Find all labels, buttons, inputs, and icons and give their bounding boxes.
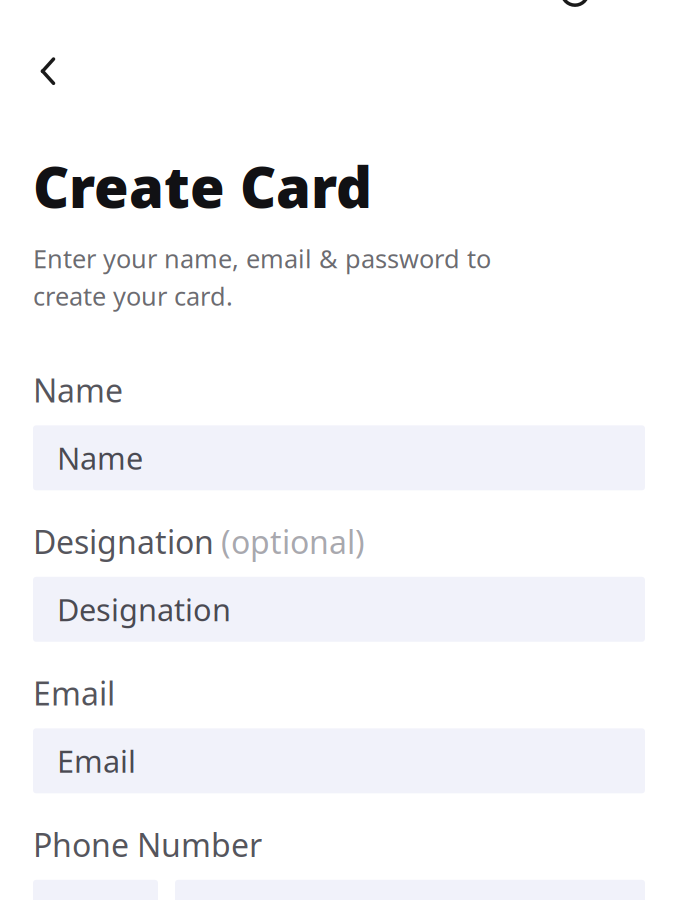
staticText: Phone Number	[33, 823, 262, 866]
staticText: Create Card	[33, 149, 372, 224]
staticText: Name	[33, 369, 123, 411]
staticText: Designation	[57, 589, 231, 630]
button[interactable]: Back	[18, 43, 78, 99]
staticText: Name	[57, 437, 143, 478]
staticText: (optional)	[221, 520, 365, 563]
button[interactable]: Designation	[33, 577, 645, 642]
button[interactable]: Email	[33, 728, 645, 793]
staticText: Enter your name, email & password to	[33, 242, 491, 275]
button[interactable]: Name	[33, 425, 645, 490]
staticText: Designation	[33, 520, 214, 563]
staticText: Email	[33, 672, 115, 714]
staticText: Email	[57, 740, 136, 781]
staticText: create your card.	[33, 279, 233, 313]
